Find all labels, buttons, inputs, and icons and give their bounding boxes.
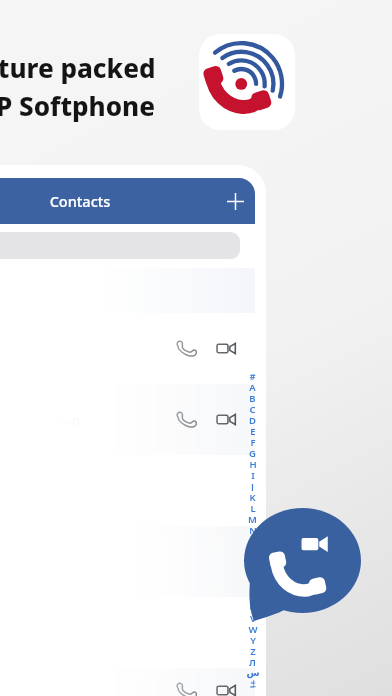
button[interactable]: Add contact: [217, 183, 253, 219]
button[interactable]: Alan Weber: [0, 455, 255, 526]
staticText: K: [249, 491, 256, 502]
button[interactable]: Alice Miller: [0, 668, 255, 696]
staticText: Feature packed: [0, 50, 156, 85]
button[interactable]: New call: [239, 503, 363, 629]
staticText: #: [249, 370, 256, 381]
staticText: U: [249, 601, 257, 612]
staticText: G: [249, 447, 256, 458]
staticText: M: [248, 513, 257, 524]
staticText: Z: [250, 645, 256, 656]
button[interactable]: Alexa Roberts: [0, 597, 255, 668]
staticText: I: [251, 469, 255, 480]
button[interactable]: Adam Thompson: [0, 384, 255, 455]
staticText: V: [250, 612, 256, 623]
button[interactable]: Abigail Jones: [0, 313, 255, 384]
staticText: Y: [250, 634, 256, 645]
staticText: F: [250, 436, 256, 447]
staticText: H: [249, 458, 257, 469]
staticText: J: [251, 480, 254, 491]
staticText: N: [249, 524, 257, 535]
staticText: A: [249, 381, 256, 392]
staticText: L: [250, 502, 256, 513]
staticText: B: [249, 392, 256, 403]
staticText: D: [249, 414, 256, 425]
staticText: E: [250, 425, 256, 436]
button[interactable]: App icon: [199, 34, 295, 130]
staticText: Л: [249, 656, 256, 667]
staticText: س: [246, 667, 260, 678]
staticText: ま: [248, 678, 258, 689]
staticText: W: [248, 623, 258, 634]
staticText: VoIP Softphone: [0, 88, 156, 123]
staticText: Contacts: [0, 191, 217, 211]
staticText: C: [249, 403, 256, 414]
staticText: O: [249, 535, 257, 546]
button[interactable]: Alphabet index: [245, 370, 260, 689]
button[interactable]: Albert Nash: [0, 526, 255, 597]
